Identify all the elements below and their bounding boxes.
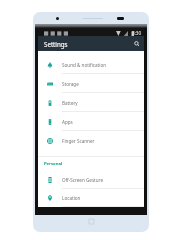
staticText: 8:30	[132, 30, 142, 36]
staticText: Location	[62, 195, 81, 201]
button[interactable]: Sound & notification	[38, 55, 144, 74]
button[interactable]: Location	[38, 189, 144, 207]
staticText: Storage	[62, 81, 79, 87]
button[interactable]: Home	[89, 219, 94, 224]
button[interactable]: Apps	[38, 112, 144, 131]
button[interactable]: Search	[132, 39, 141, 48]
staticText: Personal	[44, 161, 63, 167]
staticText: Finger Scanner	[62, 138, 95, 144]
button[interactable]: Battery	[38, 93, 144, 112]
staticText: Battery	[62, 100, 78, 106]
button[interactable]: Finger Scanner	[38, 131, 144, 150]
button[interactable]: Off-Screen Gesture	[38, 170, 144, 189]
staticText: Sound & notification	[62, 62, 107, 68]
button[interactable]: Storage	[38, 74, 144, 93]
staticText: Off-Screen Gesture	[62, 177, 104, 183]
staticText: Apps	[62, 119, 73, 125]
staticText: Settings	[44, 40, 68, 48]
